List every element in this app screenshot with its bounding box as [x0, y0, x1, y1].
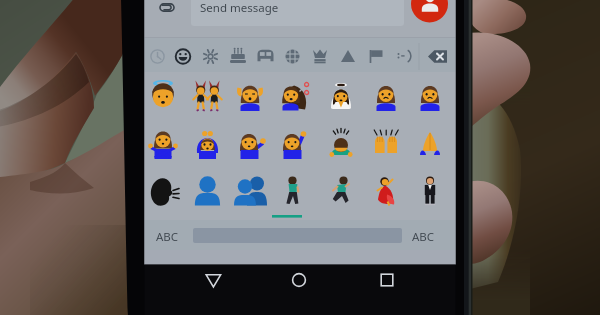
button[interactable]: Phone showing emoji keyboard [0, 0, 600, 315]
